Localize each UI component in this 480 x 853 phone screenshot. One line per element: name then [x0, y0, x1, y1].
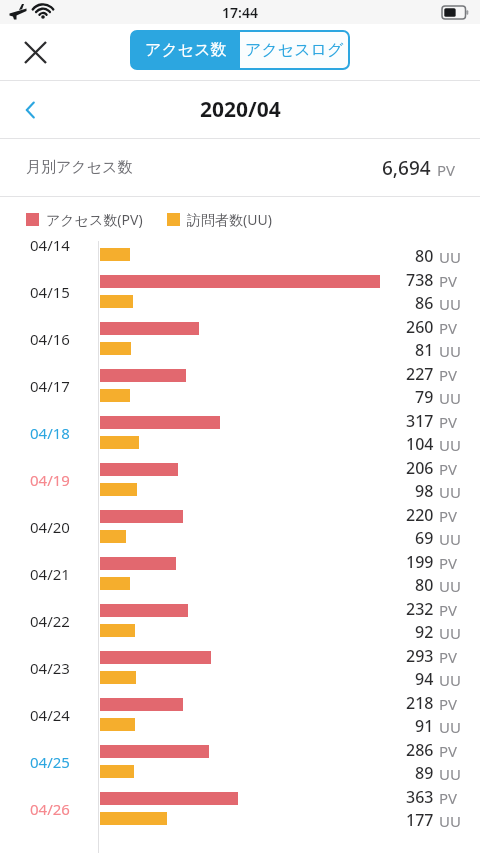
staticText: 220 [406, 504, 434, 526]
button[interactable]: アクセス数 [131, 31, 240, 69]
staticText: 260 [406, 316, 434, 338]
staticText: アクセス数 [145, 40, 227, 60]
staticText: 17:44 [222, 3, 258, 22]
staticText: 69 [415, 527, 434, 549]
staticText: PV [439, 459, 458, 479]
staticText: 86 [415, 292, 434, 314]
staticText: 293 [406, 645, 434, 667]
staticText: 80 [415, 574, 434, 596]
staticText: 04/23 [30, 658, 70, 678]
staticText: 227 [406, 363, 434, 385]
staticText: 04/25 [30, 752, 70, 772]
staticText: 79 [415, 386, 434, 408]
staticText: 04/20 [30, 517, 70, 537]
staticText: 04/18 [30, 423, 70, 443]
staticText: UU [439, 294, 461, 314]
staticText: 91 [415, 715, 434, 737]
button[interactable]: 04/24 [0, 691, 480, 738]
button[interactable]: 04/19 [0, 456, 480, 503]
staticText: 206 [406, 457, 434, 479]
staticText: 286 [406, 739, 434, 761]
staticText: UU [439, 576, 461, 596]
staticText: 訪問者数(UU) [187, 210, 272, 229]
staticText: 04/14 [30, 241, 70, 255]
staticText: アクセス数(PV) [46, 210, 143, 229]
button[interactable]: 04/25 [0, 738, 480, 785]
button[interactable]: 04/16 [0, 315, 480, 362]
staticText: UU [439, 529, 461, 549]
button[interactable]: Previous month [10, 88, 54, 132]
button[interactable]: 04/20 [0, 503, 480, 550]
staticText: PV [439, 694, 458, 714]
staticText: 81 [415, 339, 434, 361]
staticText: 363 [406, 786, 434, 808]
button[interactable]: 04/18 [0, 409, 480, 456]
staticText: 199 [406, 551, 434, 573]
staticText: 04/21 [30, 564, 70, 584]
staticText: PV [439, 600, 458, 620]
staticText: 232 [406, 598, 434, 620]
staticText: 104 [406, 433, 434, 455]
staticText: PV [439, 506, 458, 526]
button[interactable]: アクセスログ [240, 31, 349, 69]
button[interactable]: 04/17 [0, 362, 480, 409]
staticText: PV [439, 365, 458, 385]
button[interactable]: Close [13, 30, 57, 74]
button[interactable]: 04/26 [0, 785, 480, 832]
button[interactable]: 04/22 [0, 597, 480, 644]
staticText: PV [437, 160, 456, 180]
staticText: UU [439, 764, 461, 784]
staticText: 317 [406, 410, 434, 432]
staticText: 738 [406, 269, 434, 291]
staticText: UU [439, 247, 461, 267]
staticText: PV [439, 553, 458, 573]
staticText: PV [439, 647, 458, 667]
staticText: 04/15 [30, 282, 70, 302]
staticText: PV [439, 412, 458, 432]
staticText: 04/22 [30, 611, 70, 631]
staticText: 月別アクセス数 [26, 158, 133, 177]
staticText: UU [439, 482, 461, 502]
staticText: 94 [415, 668, 434, 690]
staticText: 04/19 [30, 470, 70, 490]
staticText: PV [439, 318, 458, 338]
staticText: 89 [415, 762, 434, 784]
staticText: UU [439, 670, 461, 690]
staticText: アクセスログ [245, 40, 344, 60]
staticText: UU [439, 811, 461, 831]
staticText: 218 [406, 692, 434, 714]
staticText: 6,694 [382, 155, 431, 181]
staticText: UU [439, 717, 461, 737]
button[interactable]: 04/14 [0, 241, 480, 268]
staticText: PV [439, 788, 458, 808]
staticText: UU [439, 435, 461, 455]
staticText: 98 [415, 480, 434, 502]
staticText: UU [439, 388, 461, 408]
staticText: 04/24 [30, 705, 70, 725]
staticText: 80 [415, 245, 434, 267]
staticText: PV [439, 741, 458, 761]
staticText: PV [439, 271, 458, 291]
button[interactable]: 04/23 [0, 644, 480, 691]
staticText: 04/16 [30, 329, 70, 349]
staticText: 04/26 [30, 799, 70, 819]
button[interactable]: 04/21 [0, 550, 480, 597]
button[interactable]: 04/15 [0, 268, 480, 315]
staticText: 177 [406, 809, 434, 831]
staticText: 92 [415, 621, 434, 643]
staticText: 04/17 [30, 376, 70, 396]
staticText: UU [439, 623, 461, 643]
staticText: UU [439, 341, 461, 361]
staticText: 2020/04 [200, 95, 281, 124]
